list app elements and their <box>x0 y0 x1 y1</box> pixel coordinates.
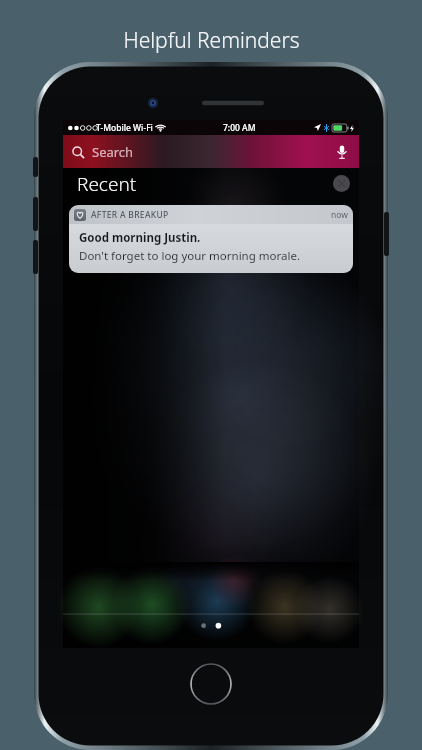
staticText: Search <box>92 143 134 161</box>
staticText: 7:00 AM <box>223 122 256 134</box>
staticText: Good morning Justin. <box>79 230 201 246</box>
staticText: Recent <box>77 171 137 197</box>
button[interactable]: Voice search <box>334 144 350 160</box>
button[interactable]: AFTER A BREAKUP <box>69 205 353 273</box>
staticText: T-Mobile Wi-Fi <box>96 122 153 134</box>
staticText: now <box>331 209 348 221</box>
staticText: AFTER A BREAKUP <box>91 209 169 221</box>
button[interactable]: Search <box>63 135 359 168</box>
staticText: Helpful Reminders <box>123 26 300 55</box>
button[interactable]: Clear recent <box>333 175 350 192</box>
staticText: Don't forget to log your morning morale. <box>79 248 300 264</box>
